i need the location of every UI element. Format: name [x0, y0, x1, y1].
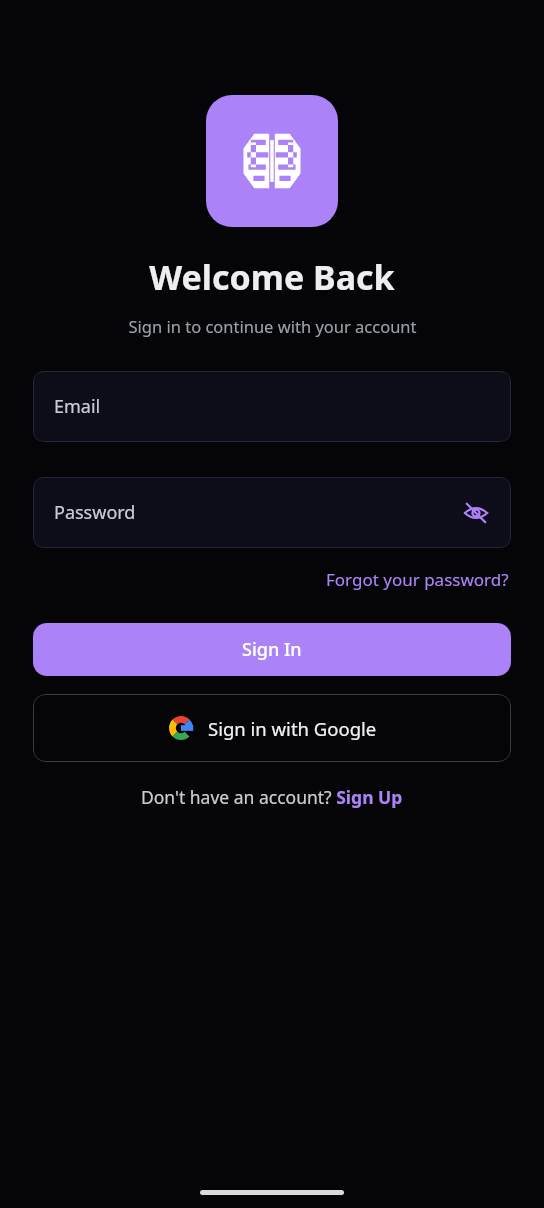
button[interactable]: Sign In — [33, 623, 511, 676]
staticText: Forgot your password? — [326, 568, 509, 591]
staticText: Password — [54, 500, 459, 525]
staticText: Email — [54, 394, 493, 419]
staticText: Sign in to continue with your account — [128, 315, 417, 337]
button[interactable]: Email — [33, 371, 511, 442]
staticText: Sign In — [242, 637, 302, 662]
staticText: Don't have an account? Sign Up — [141, 785, 403, 809]
button[interactable]: Show password — [459, 496, 493, 530]
button[interactable]: Don't have an account? Sign Up — [135, 782, 409, 812]
button[interactable]: Password — [33, 477, 511, 548]
button[interactable]: Sign in with Google — [33, 694, 511, 762]
button[interactable]: Forgot your password? — [324, 565, 511, 594]
staticText: Welcome Back — [149, 254, 395, 300]
staticText: Sign in with Google — [208, 716, 377, 741]
